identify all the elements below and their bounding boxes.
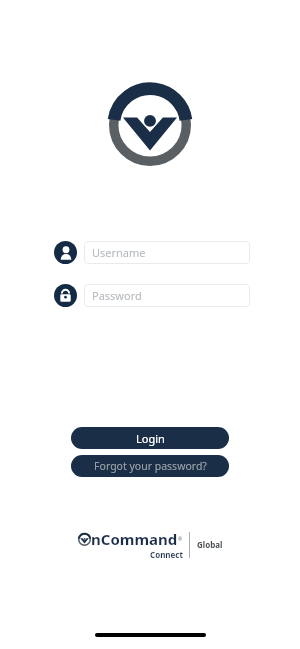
staticText: nCommand	[91, 529, 178, 549]
button[interactable]: Login	[71, 427, 229, 449]
staticText: Global	[197, 539, 223, 550]
staticText: Connect	[150, 549, 183, 560]
staticText: Forgot your password?	[94, 459, 207, 473]
staticText: Password	[92, 288, 142, 303]
button[interactable]: Username	[84, 241, 250, 264]
staticText: ®	[178, 536, 183, 543]
staticText: Login	[136, 431, 165, 446]
button[interactable]: Password	[84, 284, 250, 307]
staticText: Username	[92, 245, 146, 260]
button[interactable]: Forgot your password?	[71, 455, 229, 477]
